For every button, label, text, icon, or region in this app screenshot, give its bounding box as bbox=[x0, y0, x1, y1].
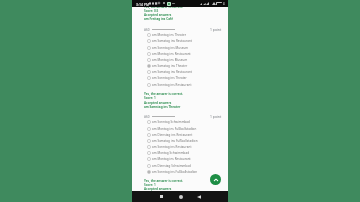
button[interactable]: am Dienstag Schwimmbad bbox=[147, 163, 225, 169]
button[interactable]: am Sonntag Schwimmbad bbox=[147, 119, 225, 125]
staticText: Score: 0.5 bbox=[144, 9, 159, 13]
button[interactable]: am Montag Schwimmbad bbox=[147, 150, 225, 156]
button[interactable]: am Sonntag ins Museum bbox=[147, 45, 225, 51]
staticText: 4 bbox=[223, 2, 225, 6]
button[interactable]: Scroll to top bbox=[210, 174, 221, 185]
button[interactable]: am Samstag ins Fußballstadion bbox=[147, 138, 225, 144]
staticText: am Montag ins Restaurant bbox=[152, 157, 191, 161]
staticText: am Samstag ins Restaurant bbox=[152, 70, 192, 74]
staticText: am Sonntag ins Fußballstadion bbox=[152, 170, 198, 174]
staticText: am Montag ins Theater bbox=[152, 33, 187, 37]
staticText: Accepted answers bbox=[144, 101, 172, 105]
button[interactable]: am Montag ins Theater bbox=[147, 32, 225, 38]
staticText: Yes, the answer is correct. bbox=[144, 92, 184, 96]
staticText: am Sonntag ins Restaurant bbox=[152, 145, 192, 149]
button[interactable]: Home bbox=[175, 191, 186, 202]
staticText: Score: 1 bbox=[144, 183, 156, 187]
staticText: Accepted answers bbox=[144, 13, 172, 17]
staticText: am Sonntag ins Museum bbox=[152, 46, 189, 50]
staticText: am Freitag ins Café bbox=[144, 17, 173, 21]
staticText: am Dienstag Schwimmbad bbox=[152, 164, 191, 168]
button[interactable]: am Montag ins Fußballstadion bbox=[147, 126, 225, 132]
button[interactable]: am Sonntag ins Fußballstadion bbox=[147, 169, 225, 175]
button[interactable]: am Samstag ins Restaurant bbox=[147, 69, 225, 75]
staticText: am Samstag ins Restaurant bbox=[152, 39, 192, 43]
staticText: am Samstag ins Theater bbox=[152, 64, 188, 68]
staticText: am Montag Schwimmbad bbox=[152, 151, 190, 155]
button[interactable]: am Montag ins Museum bbox=[147, 57, 225, 63]
staticText: am Dienstag ins Restaurant bbox=[152, 133, 193, 137]
button[interactable]: am Dienstag ins Restaurant bbox=[147, 132, 225, 138]
button[interactable]: am Samstag ins Theater bbox=[147, 63, 225, 69]
staticText: am Montag ins Fußballstadion bbox=[152, 127, 197, 131]
button[interactable]: am Sonntag ins Restaurant bbox=[147, 82, 225, 88]
staticText: am Sonntag ins Restaurant bbox=[152, 83, 192, 87]
button[interactable]: Recent apps bbox=[156, 191, 167, 202]
staticText: #60 bbox=[144, 115, 150, 119]
staticText: am Sonntag Schwimmbad bbox=[152, 120, 191, 124]
staticText: am Montag ins Restaurant bbox=[152, 52, 191, 56]
staticText: 3:14 PM bbox=[136, 2, 150, 7]
staticText: 1 point bbox=[210, 27, 222, 32]
staticText: am Sonntag ins Theater bbox=[152, 76, 187, 80]
staticText: Yes, the answer is correct. bbox=[144, 179, 184, 183]
staticText: am Samstag ins Theater bbox=[144, 105, 181, 109]
staticText: Yes, the answer is correct. bbox=[144, 5, 184, 9]
staticText: am Samstag ins Fußballstadion bbox=[152, 139, 198, 143]
button[interactable]: am Montag ins Restaurant bbox=[147, 51, 225, 57]
staticText: Score: 1 bbox=[144, 96, 156, 100]
button[interactable]: am Sonntag ins Restaurant bbox=[147, 144, 225, 150]
button[interactable]: am Samstag ins Restaurant bbox=[147, 38, 225, 44]
staticText: Accepted answers bbox=[144, 187, 172, 191]
button[interactable]: am Sonntag ins Theater bbox=[147, 75, 225, 81]
staticText: #60 bbox=[144, 28, 150, 32]
staticText: am Montag ins Museum bbox=[152, 58, 188, 62]
staticText: 1 point bbox=[210, 114, 222, 119]
button[interactable]: Back bbox=[193, 191, 204, 202]
button[interactable]: am Montag ins Restaurant bbox=[147, 156, 225, 162]
